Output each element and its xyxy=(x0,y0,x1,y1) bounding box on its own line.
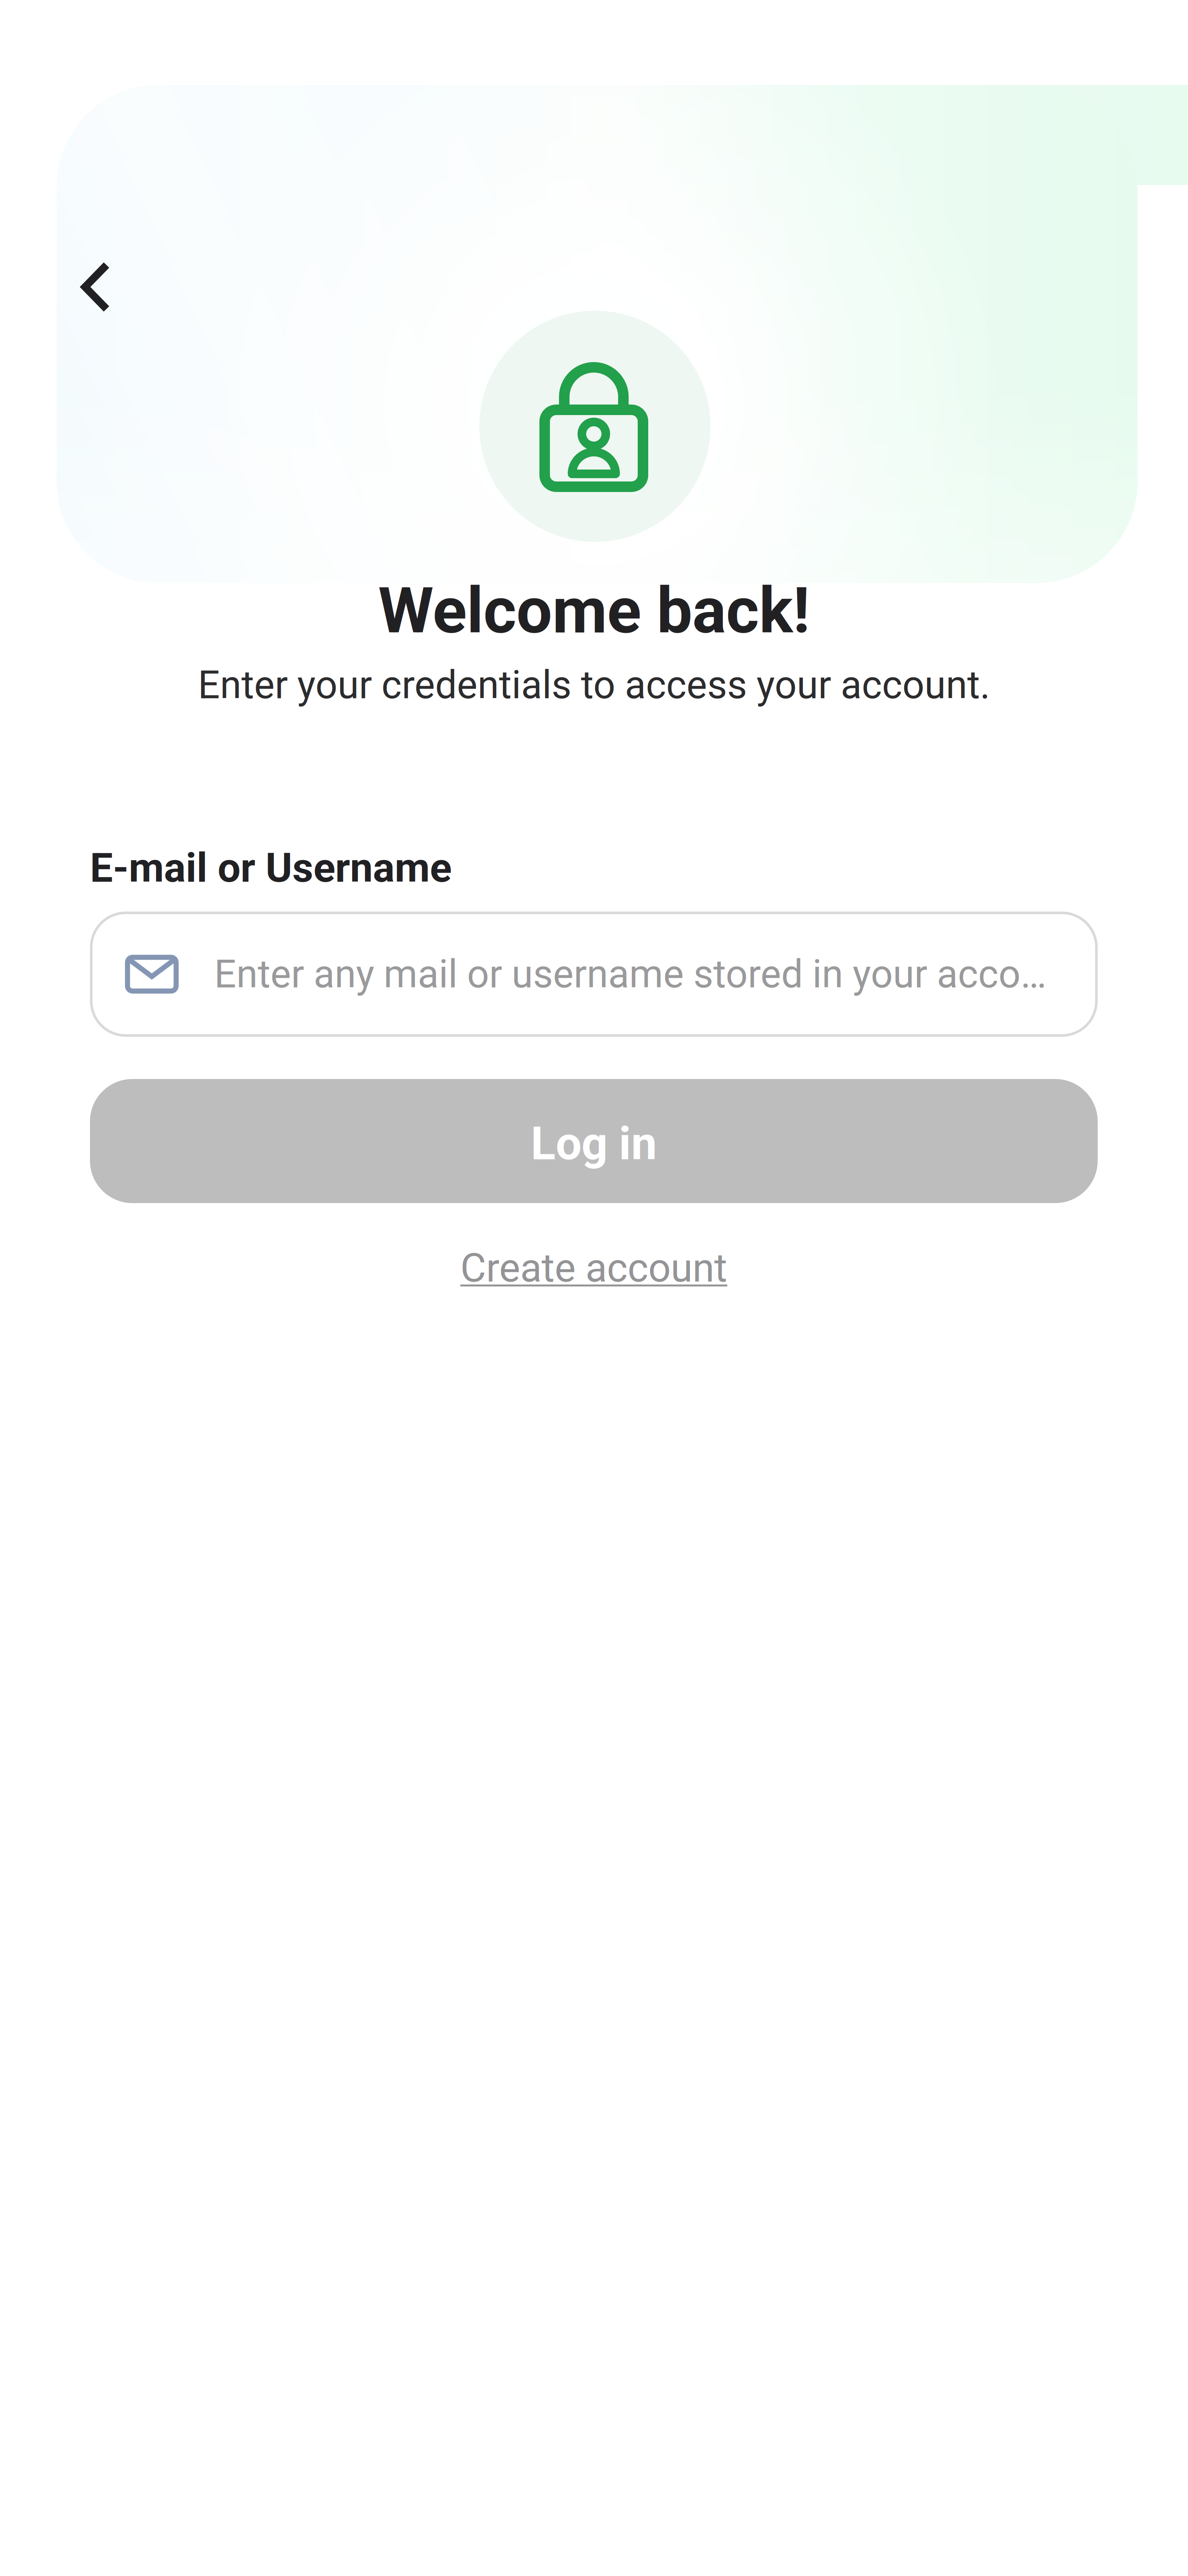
button[interactable]: Enter any mail or username stored in you… xyxy=(91,913,1096,1035)
staticText: E-mail or Username xyxy=(90,844,452,892)
button[interactable]: Back xyxy=(50,242,141,332)
staticText: Create account xyxy=(460,1245,727,1291)
staticText: Log in xyxy=(531,1117,657,1171)
staticText: Welcome back! xyxy=(378,574,810,648)
button[interactable]: Log in xyxy=(90,1079,1098,1203)
button[interactable]: Create account xyxy=(90,1237,1098,1299)
staticText: Enter any mail or username stored in you… xyxy=(214,951,1046,997)
staticText: Enter your credentials to access your ac… xyxy=(198,662,990,708)
